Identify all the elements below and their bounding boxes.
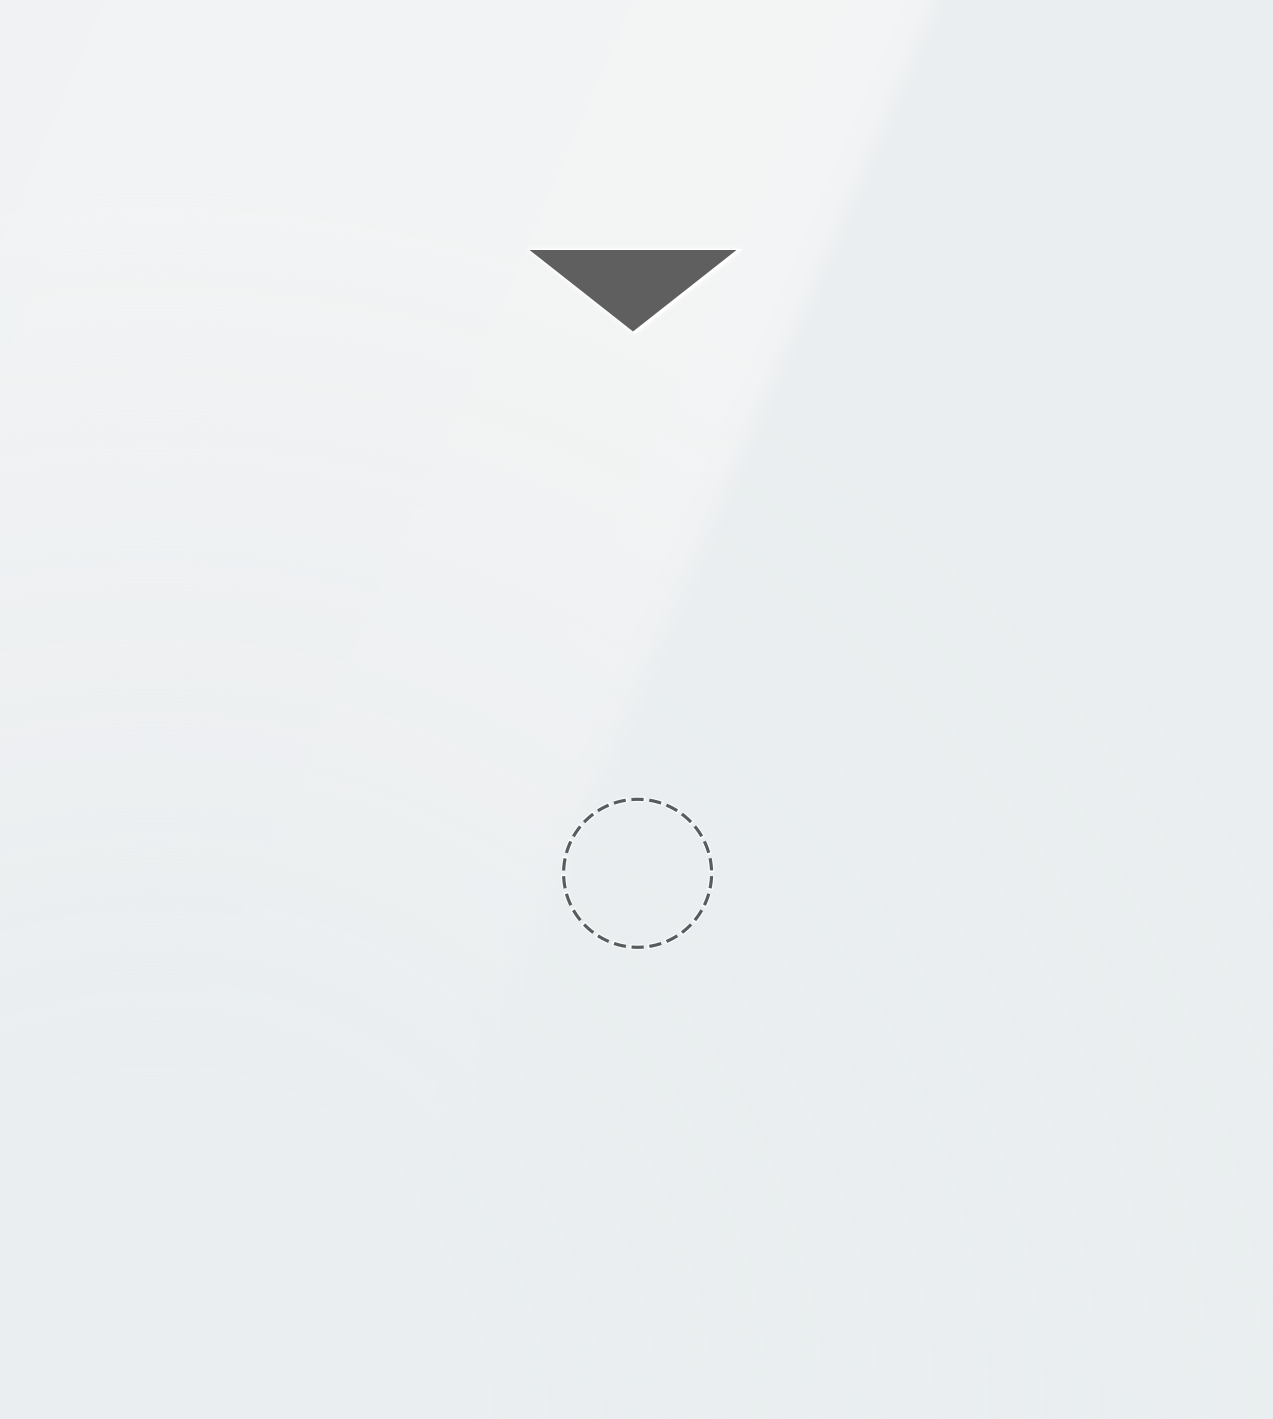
button[interactable]: Collapse — [527, 249, 743, 334]
button[interactable]: Add — [564, 799, 712, 947]
